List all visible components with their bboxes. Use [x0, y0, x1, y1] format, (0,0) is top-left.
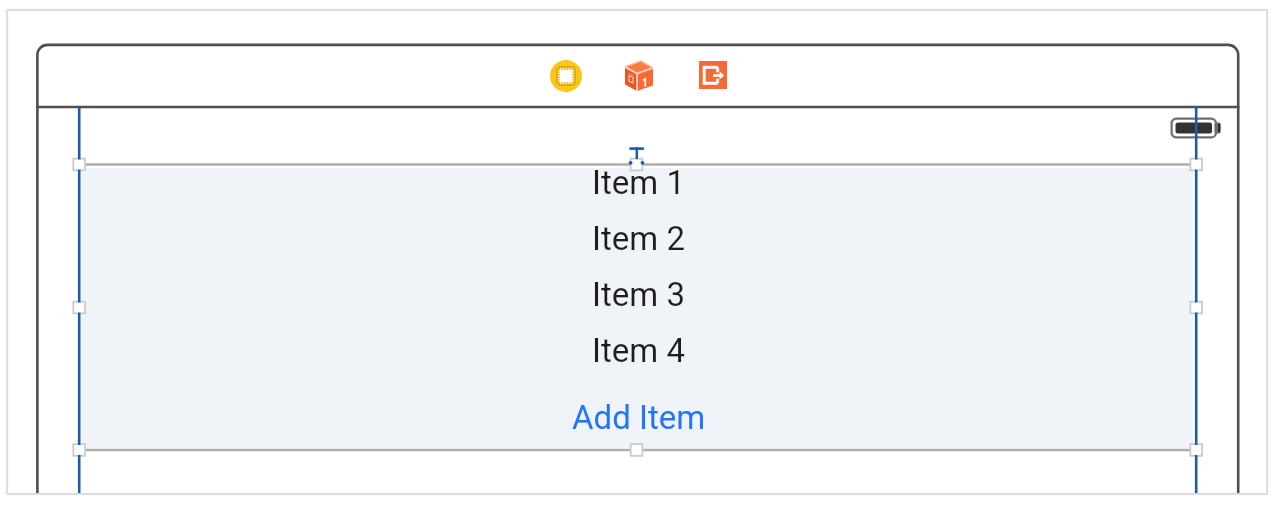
button[interactable]: Open in new window	[699, 61, 727, 89]
button[interactable]: Item 1	[80, 154, 1197, 210]
button[interactable]: Item 4	[80, 322, 1197, 378]
button[interactable]: Add Item	[80, 378, 1197, 445]
staticText: Item 1	[592, 163, 685, 202]
button[interactable]: Select component	[550, 60, 582, 92]
button[interactable]: 3D view	[625, 61, 653, 91]
button[interactable]: Item 3	[80, 266, 1197, 322]
staticText: Item 3	[592, 275, 685, 314]
staticText: Item 4	[592, 331, 685, 370]
staticText: Item 2	[592, 219, 685, 258]
button[interactable]: Item 2	[80, 210, 1197, 266]
staticText: Add Item	[572, 398, 706, 437]
